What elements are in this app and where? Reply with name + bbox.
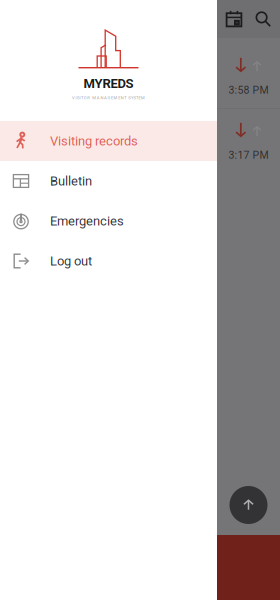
staticText: 3:17 PM <box>228 149 268 161</box>
button[interactable]: 3:17 PM <box>217 109 280 173</box>
staticText: Visiting records <box>50 133 138 149</box>
staticText: VISITOR MANAGEMENT SYSTEM <box>72 95 145 100</box>
staticText: Log out <box>50 253 92 269</box>
button[interactable]: Search <box>254 10 272 28</box>
staticText: 3:58 PM <box>228 84 268 96</box>
button[interactable]: Emergencies <box>0 201 217 241</box>
button[interactable]: Visiting records <box>0 121 217 161</box>
staticText: MYREDS <box>83 76 133 91</box>
button[interactable]: 3:58 PM <box>217 44 280 108</box>
staticText: Emergencies <box>50 213 124 229</box>
button[interactable]: Bulletin <box>0 161 217 201</box>
staticText: Bulletin <box>50 173 92 189</box>
button[interactable]: Scroll to top <box>217 486 280 524</box>
button[interactable]: Log out <box>0 241 217 281</box>
button[interactable]: Calendar <box>225 10 243 28</box>
